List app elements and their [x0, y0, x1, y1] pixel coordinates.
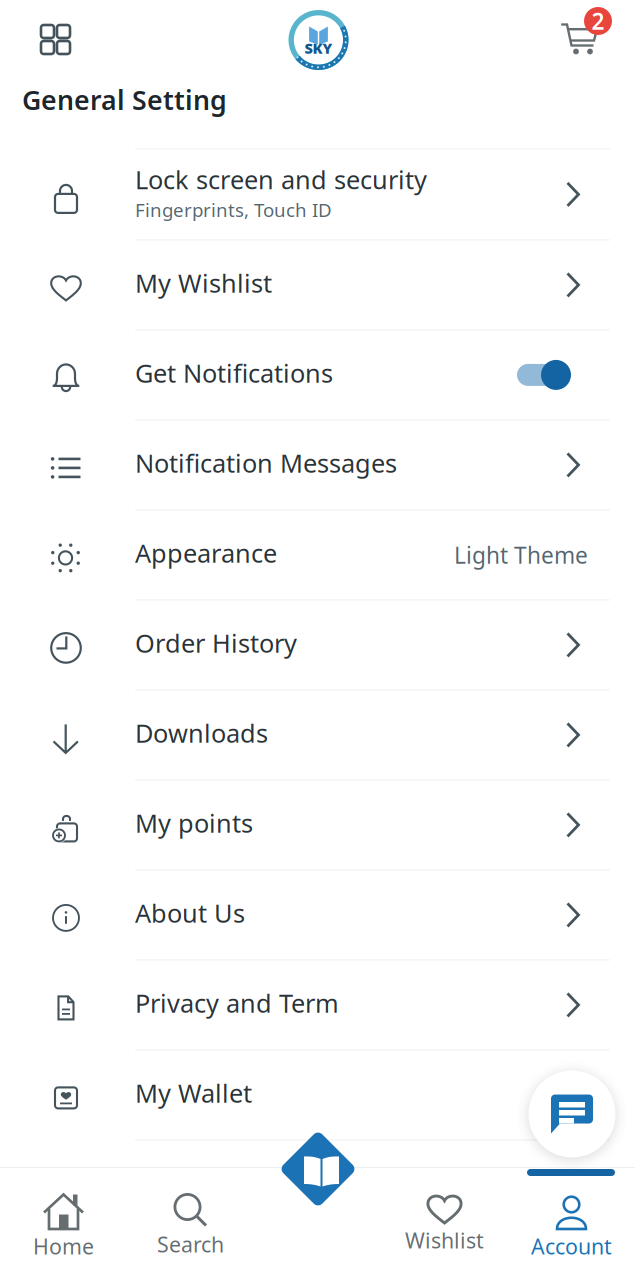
staticText: Lock screen and security — [135, 163, 427, 196]
button[interactable]: Account — [508, 1168, 635, 1280]
button[interactable]: Search — [127, 1168, 254, 1280]
staticText: Get Notifications — [135, 356, 333, 390]
staticText: SKY — [304, 38, 332, 58]
button[interactable]: About Us — [0, 870, 635, 960]
staticText: Home — [33, 1232, 94, 1260]
button[interactable]: Get Notifications — [0, 330, 635, 420]
button[interactable]: Cart — [546, 2, 610, 64]
staticText: Notification Messages — [135, 446, 397, 480]
staticText: Privacy and Term — [135, 986, 339, 1020]
button[interactable]: SKY home — [288, 10, 348, 70]
staticText: My Wallet — [135, 1076, 252, 1110]
button[interactable]: Lock screen and security — [0, 149, 635, 240]
button[interactable]: Notification Messages — [0, 420, 635, 510]
button[interactable]: My points — [0, 780, 635, 870]
staticText: Light Theme — [454, 540, 588, 570]
button[interactable]: Appearance — [0, 510, 635, 600]
staticText: My Wishlist — [135, 266, 272, 300]
staticText: Search — [157, 1230, 224, 1258]
button[interactable]: Privacy and Term — [0, 960, 635, 1050]
staticText: My points — [135, 806, 253, 840]
button[interactable]: Menu — [24, 8, 86, 70]
button[interactable]: My Wishlist — [0, 240, 635, 330]
button[interactable]: Books — [275, 1126, 361, 1212]
staticText: General Setting — [22, 82, 227, 117]
button[interactable]: Chat — [528, 1070, 615, 1157]
button[interactable]: Order History — [0, 600, 635, 690]
staticText: About Us — [135, 896, 245, 930]
staticText: Appearance — [135, 536, 277, 570]
button[interactable]: My Wallet — [0, 1050, 635, 1140]
staticText: Downloads — [135, 716, 268, 750]
staticText: Wishlist — [405, 1226, 484, 1254]
staticText: Account — [531, 1232, 612, 1260]
button[interactable]: Home — [0, 1168, 127, 1280]
staticText: Fingerprints, Touch ID — [135, 197, 332, 222]
button[interactable]: Wishlist — [381, 1168, 508, 1280]
button[interactable]: Downloads — [0, 690, 635, 780]
staticText: 2 — [591, 6, 604, 36]
staticText: Order History — [135, 626, 297, 660]
